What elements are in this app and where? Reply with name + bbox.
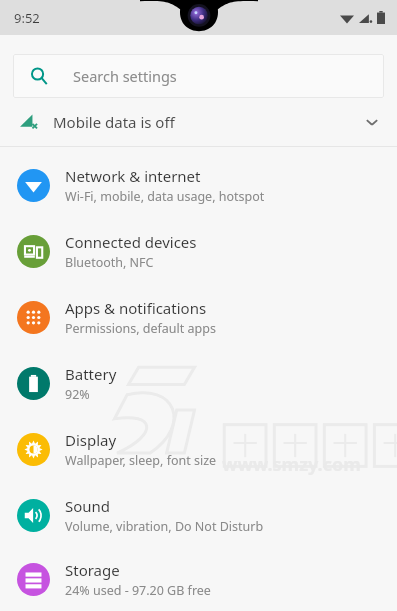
button[interactable]: Connected devices	[0, 218, 397, 284]
staticText: Wallpaper, sleep, font size	[65, 452, 217, 469]
button[interactable]: Expand mobile data	[354, 104, 390, 140]
staticText: www.smzy.com	[222, 452, 361, 477]
staticText: Mobile data is off	[53, 112, 175, 132]
staticText: Search settings	[73, 66, 177, 86]
staticText: Permissions, default apps	[65, 320, 216, 337]
staticText: Display	[65, 430, 117, 450]
staticText: 24% used - 97.20 GB free	[65, 582, 211, 599]
staticText: Connected devices	[65, 232, 197, 252]
staticText: Battery	[65, 364, 117, 384]
staticText: Volume, vibration, Do Not Disturb	[65, 518, 264, 535]
button[interactable]: Display	[0, 416, 397, 482]
staticText: Bluetooth, NFC	[65, 254, 154, 271]
staticText: 92%	[65, 386, 90, 403]
staticText: Sound	[65, 496, 111, 516]
button[interactable]: Storage	[0, 548, 397, 611]
button[interactable]: Network & internet	[0, 152, 397, 218]
staticText: 9:52	[14, 9, 40, 27]
button[interactable]: Mobile data is off	[0, 98, 397, 146]
staticText: Network & internet	[65, 166, 201, 186]
staticText: Wi-Fi, mobile, data usage, hotspot	[65, 188, 265, 205]
button[interactable]: Search settings	[13, 54, 384, 98]
button[interactable]: Battery	[0, 350, 397, 416]
staticText: Storage	[65, 560, 120, 580]
button[interactable]: Apps & notifications	[0, 284, 397, 350]
button[interactable]: Sound	[0, 482, 397, 548]
staticText: Apps & notifications	[65, 298, 207, 318]
